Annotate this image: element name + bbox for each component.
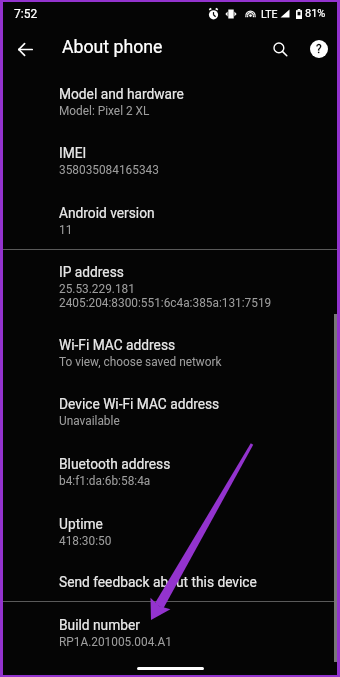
staticText: About phone — [62, 37, 163, 58]
staticText: IMEI — [59, 145, 87, 161]
button[interactable]: Build number — [3, 606, 337, 666]
staticText: 418:30:50 — [59, 534, 112, 548]
staticText: RP1A.201005.004.A1 — [59, 635, 172, 649]
button[interactable]: Uptime — [3, 505, 337, 565]
button[interactable]: Device Wi-Fi MAC address — [3, 385, 337, 445]
staticText: Android version — [59, 205, 155, 221]
staticText: Bluetooth address — [59, 456, 171, 472]
staticText: 11 — [59, 223, 73, 237]
staticText: Build number — [59, 617, 140, 633]
staticText: Device Wi-Fi MAC address — [59, 396, 220, 412]
button[interactable]: Back — [9, 33, 42, 66]
staticText: 25.53.229.181 2405:204:8300:551:6c4a:385… — [59, 282, 272, 310]
staticText: Wi-Fi MAC address — [59, 337, 176, 353]
staticText: 358035084165343 — [59, 163, 159, 177]
button[interactable]: Send feedback about this device — [3, 563, 337, 606]
staticText: LTE — [261, 8, 278, 20]
button[interactable]: Help — [302, 32, 335, 65]
staticText: 7:52 — [14, 7, 38, 21]
staticText: b4:f1:da:6b:58:4a — [59, 474, 151, 488]
button[interactable]: IMEI — [3, 134, 337, 194]
staticText: Unavailable — [59, 414, 120, 428]
staticText: IP address — [59, 264, 124, 280]
staticText: ? — [316, 42, 322, 56]
button[interactable]: Bluetooth address — [3, 445, 337, 505]
staticText: Model: Pixel 2 XL — [59, 104, 150, 118]
staticText: 81% — [305, 7, 326, 20]
staticText: Send feedback about this device — [59, 574, 257, 590]
staticText: Uptime — [59, 516, 103, 532]
button[interactable]: Model and hardware — [3, 75, 337, 135]
button[interactable]: Android version — [3, 194, 337, 254]
staticText: Model and hardware — [59, 86, 184, 102]
staticText: To view, choose saved network — [59, 355, 222, 369]
button[interactable]: IP address — [3, 253, 337, 325]
button[interactable]: Search — [264, 33, 297, 66]
button[interactable]: Wi-Fi MAC address — [3, 326, 337, 386]
